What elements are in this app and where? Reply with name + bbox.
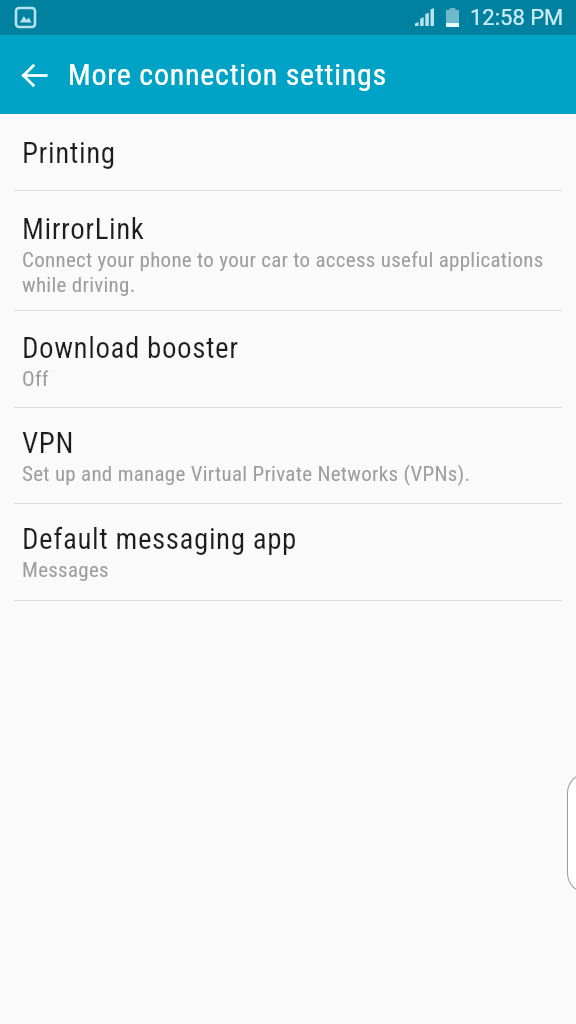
- other: Mobile signal: [415, 8, 434, 26]
- button[interactable]: Printing: [0, 114, 576, 190]
- button[interactable]: Download booster: [0, 311, 576, 407]
- staticText: Messages: [22, 557, 109, 582]
- staticText: More connection settings: [68, 57, 388, 92]
- button[interactable]: Navigate up: [10, 51, 58, 99]
- button[interactable]: Default messaging app: [0, 504, 576, 600]
- staticText: Download booster: [22, 331, 239, 365]
- button[interactable]: VPN: [0, 408, 576, 503]
- staticText: Default messaging app: [22, 522, 297, 556]
- other: Battery: [446, 8, 459, 27]
- staticText: Set up and manage Virtual Private Networ…: [22, 461, 471, 486]
- staticText: VPN: [22, 426, 74, 460]
- staticText: Off: [22, 366, 49, 391]
- button[interactable]: MirrorLink: [0, 191, 576, 310]
- staticText: 12:58 PM: [470, 5, 564, 30]
- staticText: Connect your phone to your car to access…: [22, 247, 554, 297]
- staticText: Printing: [22, 136, 116, 170]
- staticText: MirrorLink: [22, 212, 145, 246]
